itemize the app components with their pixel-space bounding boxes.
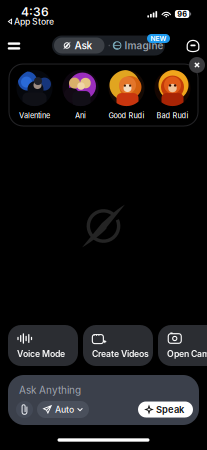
staticText: 4:36 <box>21 5 49 19</box>
button[interactable]: Auto <box>37 401 89 418</box>
button[interactable]: Voice Mode <box>8 325 78 366</box>
staticText: Ask <box>74 39 92 52</box>
staticText: Auto <box>55 404 74 415</box>
button[interactable]: Private chat <box>181 36 205 56</box>
button[interactable]: Ani <box>57 70 103 120</box>
staticText: Bad Rudi <box>156 111 188 120</box>
button[interactable]: Bad Rudi <box>149 70 195 120</box>
staticText: Ani <box>75 111 86 120</box>
staticText: NEW <box>150 34 166 43</box>
button[interactable]: Ask <box>54 37 104 53</box>
staticText: Ask Anything <box>19 384 81 396</box>
staticText: 96 <box>177 10 187 18</box>
button[interactable]: Dismiss <box>189 57 205 73</box>
button[interactable]: Menu <box>1 35 27 57</box>
staticText: Valentine <box>19 111 50 120</box>
staticText: Voice Mode <box>17 348 65 359</box>
staticText: App Store <box>14 16 54 27</box>
button[interactable]: Good Rudi <box>103 70 149 120</box>
button[interactable]: Open Camera <box>158 325 207 366</box>
button[interactable]: Attach <box>16 401 33 418</box>
button[interactable]: Speak <box>138 401 193 417</box>
staticText: Good Rudi <box>108 111 144 120</box>
staticText: Create Videos <box>92 348 149 359</box>
staticText: Speak <box>156 404 184 415</box>
staticText: Open Camera <box>167 348 207 359</box>
button[interactable]: Imagine <box>113 37 174 53</box>
staticText: Imagine <box>125 39 164 52</box>
button[interactable]: Create Videos <box>83 325 153 366</box>
button[interactable]: Valentine <box>11 70 57 120</box>
